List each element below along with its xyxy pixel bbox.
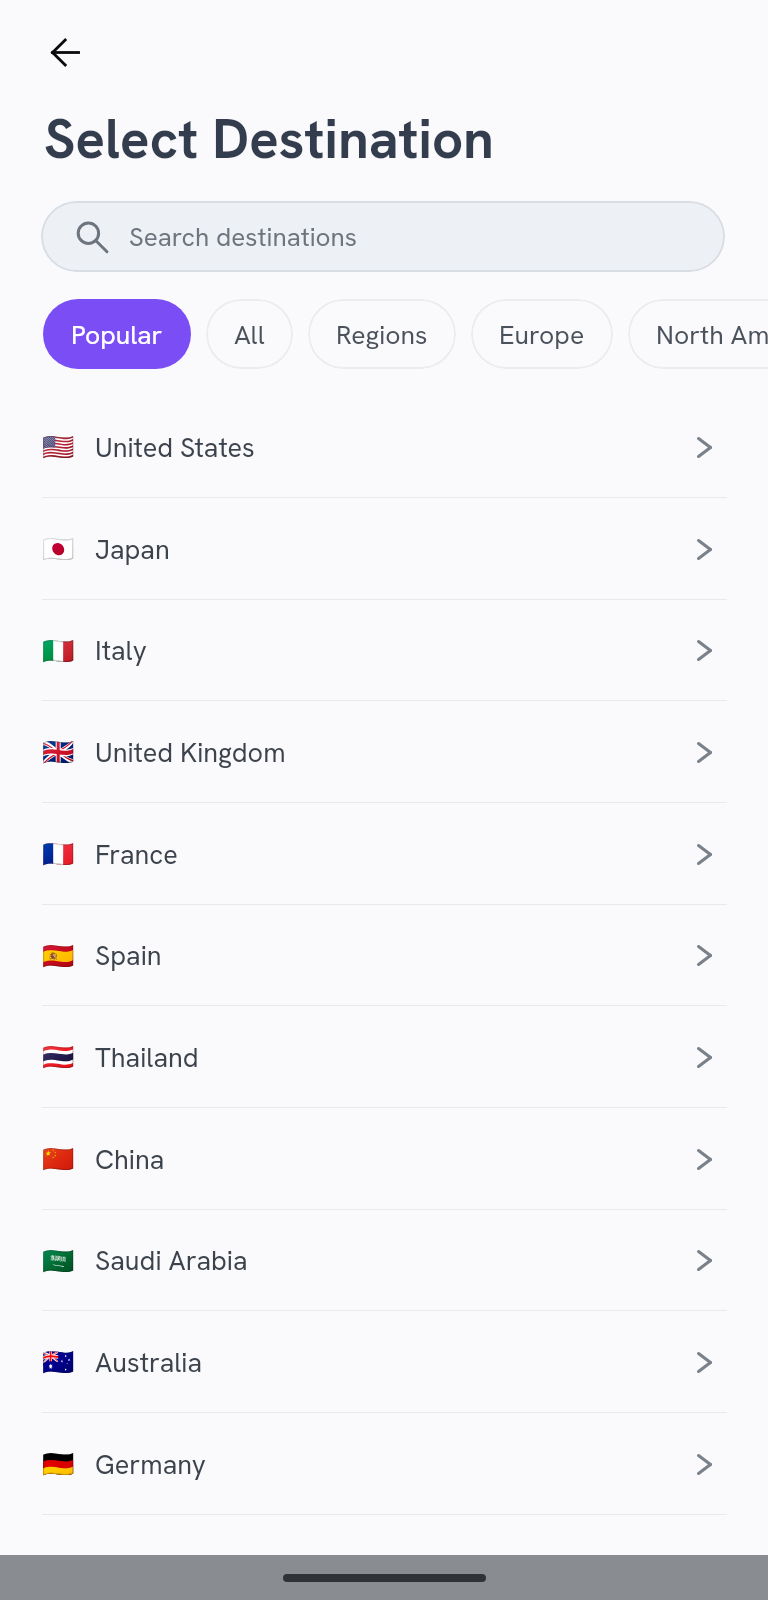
staticText: 🇹🇭 xyxy=(42,1042,72,1072)
button[interactable]: 🇹🇭 xyxy=(0,1006,768,1108)
staticText: Select Destination xyxy=(44,103,494,174)
staticText: China xyxy=(95,1142,165,1177)
staticText: Spain xyxy=(95,938,162,973)
button[interactable]: Regions xyxy=(308,299,456,369)
staticText: 🇸🇦 xyxy=(42,1246,72,1276)
button[interactable]: Popular xyxy=(43,299,191,369)
staticText: All xyxy=(234,317,265,352)
button[interactable]: 🇦🇺 xyxy=(0,1311,768,1413)
button[interactable]: Back xyxy=(39,26,91,78)
button[interactable]: Search destinations xyxy=(41,201,725,272)
staticText: 🇫🇷 xyxy=(42,839,72,869)
button[interactable]: 🇩🇪 xyxy=(0,1413,768,1515)
staticText: Saudi Arabia xyxy=(95,1243,248,1278)
staticText: 🇪🇸 xyxy=(42,941,72,971)
staticText: United Kingdom xyxy=(95,735,286,770)
staticText: United States xyxy=(95,430,255,465)
staticText: Australia xyxy=(95,1345,203,1380)
staticText: 🇯🇵 xyxy=(42,534,72,564)
staticText: Italy xyxy=(95,633,147,668)
button[interactable]: 🇸🇦 xyxy=(0,1210,768,1311)
button[interactable]: 🇺🇸 xyxy=(0,396,768,498)
staticText: 🇨🇳 xyxy=(42,1144,72,1174)
staticText: 🇬🇧 xyxy=(42,737,72,767)
staticText: Popular xyxy=(71,317,163,352)
staticText: Thailand xyxy=(95,1040,199,1075)
button[interactable]: 🇮🇹 xyxy=(0,600,768,701)
staticText: Regions xyxy=(336,317,428,352)
button[interactable]: 🇨🇳 xyxy=(0,1108,768,1210)
staticText: 🇮🇹 xyxy=(42,636,72,666)
staticText: Search destinations xyxy=(129,220,358,254)
staticText: Europe xyxy=(499,317,585,352)
staticText: 🇺🇸 xyxy=(42,432,72,462)
button[interactable]: North America xyxy=(628,299,768,369)
staticText: 🇩🇪 xyxy=(42,1449,72,1479)
button[interactable]: 🇪🇸 xyxy=(0,905,768,1006)
button[interactable]: All xyxy=(206,299,293,369)
staticText: France xyxy=(95,837,178,872)
staticText: Germany xyxy=(95,1447,206,1482)
button[interactable]: 🇯🇵 xyxy=(0,498,768,600)
button[interactable]: Europe xyxy=(471,299,613,369)
staticText: North America xyxy=(656,317,768,352)
staticText: Japan xyxy=(95,532,170,567)
button[interactable]: 🇫🇷 xyxy=(0,803,768,905)
button[interactable]: 🇬🇧 xyxy=(0,701,768,803)
staticText: 🇦🇺 xyxy=(42,1347,72,1377)
